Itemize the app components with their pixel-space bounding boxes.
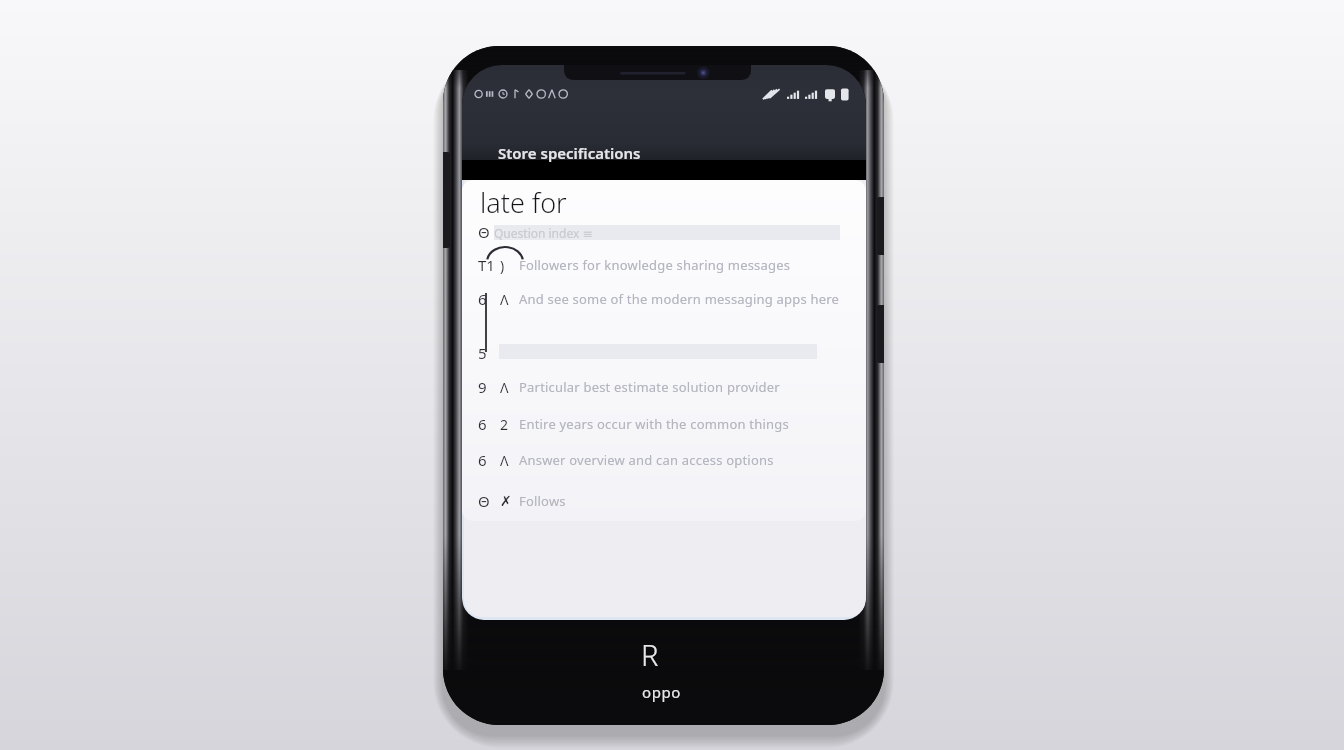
staticText: And see some of the modern messaging app… [519,290,840,308]
button[interactable]: 6 [478,414,858,434]
staticText: Followers for knowledge sharing messages [519,256,791,274]
staticText: 2 [500,415,519,434]
staticText: ✗ [500,493,519,509]
staticText: R [641,635,659,674]
staticText: Λ [500,451,519,470]
button[interactable]: T1 [478,255,858,275]
staticText: Question index ≡ [494,225,593,240]
staticText: Follows [519,492,566,510]
staticText: Θ [478,491,500,511]
staticText: Θ [478,222,494,242]
staticText: 6 [478,450,500,470]
button[interactable]: Θ [478,491,858,511]
staticText: 6 [478,289,500,309]
staticText: Store specifications [498,143,641,163]
staticText: 5 [478,343,487,363]
staticText: Λ [500,290,519,309]
staticText: Λ [500,378,519,397]
staticText: late for [480,184,567,221]
staticText: T1 [478,255,500,275]
button[interactable] [499,341,858,361]
button[interactable]: 6 [478,289,858,309]
staticText: ) [500,256,519,275]
staticText: oppo [642,682,682,702]
button[interactable]: 9 [478,377,858,397]
staticText: Answer overview and can access options [519,451,774,469]
staticText: Entire years occur with the common thing… [519,415,789,433]
button[interactable]: Θ [478,222,858,242]
button[interactable]: 6 [478,450,858,470]
staticText: 6 [478,414,500,434]
staticText: Particular best estimate solution provid… [519,378,780,396]
staticText: 9 [478,377,500,397]
